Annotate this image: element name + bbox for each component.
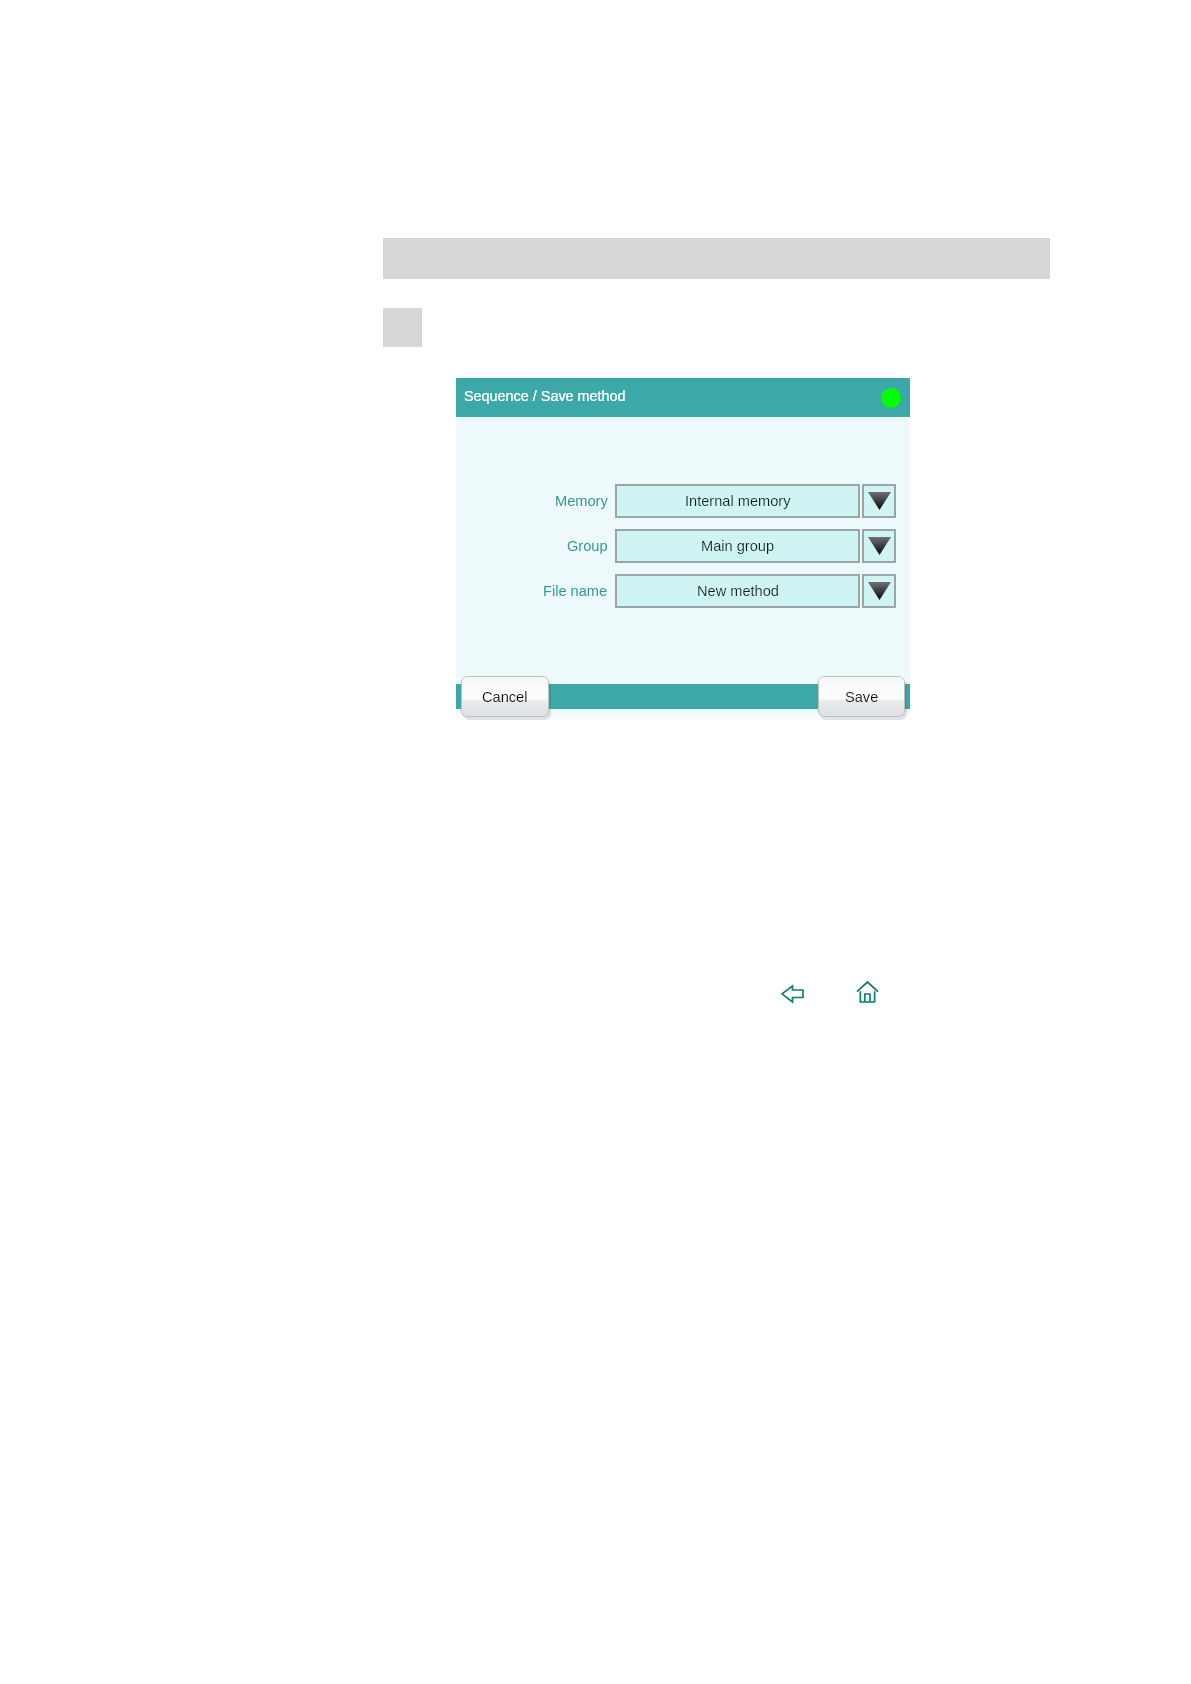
button[interactable]: Home bbox=[849, 976, 886, 1008]
staticText: Sequence / Save method bbox=[464, 388, 626, 404]
staticText: Save bbox=[845, 689, 879, 705]
button[interactable]: New method bbox=[615, 574, 860, 608]
button[interactable]: Back bbox=[773, 978, 812, 1010]
button[interactable]: Internal memory bbox=[615, 484, 860, 518]
button[interactable]: Open dropdown bbox=[862, 574, 896, 608]
staticText: Memory bbox=[555, 493, 608, 509]
button[interactable]: Main group bbox=[615, 529, 860, 563]
button[interactable]: Cancel bbox=[461, 676, 549, 717]
button[interactable]: Save bbox=[818, 676, 905, 717]
staticText: New method bbox=[697, 583, 779, 599]
staticText: File name bbox=[543, 583, 608, 599]
staticText: Internal memory bbox=[685, 493, 791, 509]
staticText: Main group bbox=[701, 538, 775, 554]
button[interactable]: Open dropdown bbox=[862, 484, 896, 518]
staticText: Cancel bbox=[482, 689, 528, 705]
staticText: Group bbox=[567, 538, 608, 554]
button[interactable]: Open dropdown bbox=[862, 529, 896, 563]
